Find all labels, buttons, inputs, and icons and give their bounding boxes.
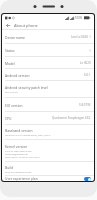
button[interactable]: Back — [2, 22, 14, 29]
button[interactable]: EUI version — [2, 98, 94, 112]
staticText: Le X620 — [80, 61, 91, 65]
staticText: Baseband version — [5, 128, 33, 132]
staticText: Mon Mar 6 15:43:21 CST 2017 — [5, 155, 40, 158]
staticText: Android version — [5, 73, 30, 77]
staticText: 100% — [75, 16, 83, 20]
staticText: android@builder #1 — [5, 152, 29, 155]
staticText: About phone — [14, 23, 38, 28]
staticText: 6.0.1 — [84, 73, 91, 77]
button[interactable]: Android security patch level — [2, 81, 94, 98]
button[interactable]: Baseband version — [2, 125, 94, 140]
staticText: CPU — [5, 116, 12, 120]
staticText: 2017-03-01 — [5, 90, 19, 93]
staticText: Qualcomm Snapdragon 652 — [52, 116, 91, 120]
staticText: Status — [5, 48, 15, 52]
button[interactable]: Model — [2, 57, 94, 69]
button[interactable]: Kernel version — [2, 140, 94, 162]
button[interactable]: Status — [2, 44, 94, 57]
button[interactable]: Android version — [2, 69, 94, 81]
staticText: EUI version — [5, 103, 23, 107]
staticText: Letv Le X620 — [71, 35, 88, 39]
staticText: Build — [5, 165, 13, 169]
staticText: Kernel version — [5, 144, 28, 148]
staticText: Android security patch level — [5, 85, 48, 89]
staticText: User experience plan — [5, 176, 38, 180]
staticText: FEXCNFN5902012102S — [5, 170, 32, 173]
staticText: 3.18.31-perf-g0e1c1ba — [5, 149, 32, 152]
button[interactable]: Device name — [2, 30, 94, 44]
button[interactable]: User experience plan — [5, 176, 91, 181]
staticText: 5.8.019S — [79, 103, 91, 107]
button[interactable]: CPU — [2, 112, 94, 125]
staticText: Device name — [5, 35, 25, 39]
staticText: MPSS.TA.2.3.c1-00029-8976_GEN_PACK — [5, 133, 51, 136]
staticText: Model — [5, 61, 15, 65]
button[interactable]: Build — [2, 162, 94, 176]
